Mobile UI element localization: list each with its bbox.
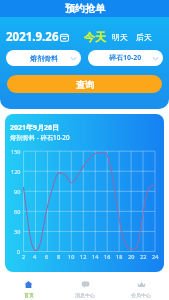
staticText: 14 bbox=[92, 253, 99, 260]
staticText: 2 bbox=[22, 253, 26, 260]
button[interactable]: 今天 bbox=[84, 30, 106, 44]
staticText: 60 bbox=[14, 208, 21, 215]
button[interactable]: 熔剂骨料 bbox=[6, 50, 81, 66]
staticText: 熔剂骨料 bbox=[30, 54, 58, 63]
button[interactable]: Pick date bbox=[60, 33, 69, 42]
staticText: 0 bbox=[17, 248, 21, 255]
staticText: 碎石10-20 bbox=[109, 53, 142, 63]
staticText: 6 bbox=[45, 253, 49, 260]
staticText: 后天 bbox=[136, 32, 152, 42]
staticText: 熔剂骨料 - 碎石10-20 bbox=[10, 133, 70, 142]
staticText: 预约抢单 bbox=[65, 2, 105, 15]
staticText: 30 bbox=[14, 228, 21, 235]
button[interactable]: 查询 bbox=[7, 75, 162, 93]
staticText: 24 bbox=[152, 253, 159, 260]
staticText: 会员中心 bbox=[131, 292, 151, 298]
staticText: 消息中心 bbox=[75, 292, 95, 298]
staticText: 18 bbox=[116, 253, 123, 260]
staticText: 10 bbox=[68, 253, 75, 260]
staticText: 4 bbox=[33, 253, 37, 260]
button[interactable]: 碎石10-20 bbox=[88, 50, 163, 66]
button[interactable]: 后天 bbox=[136, 32, 152, 42]
staticText: 150 bbox=[11, 148, 21, 155]
button[interactable]: 首页 bbox=[0, 272, 57, 300]
staticText: 查询 bbox=[76, 79, 94, 90]
button[interactable]: 明天 bbox=[112, 32, 128, 42]
staticText: 2021.9.26 bbox=[6, 29, 59, 45]
staticText: 2021年9月26日 bbox=[10, 123, 60, 133]
staticText: 120 bbox=[11, 168, 21, 175]
staticText: 明天 bbox=[112, 32, 128, 42]
staticText: 8 bbox=[57, 253, 61, 260]
staticText: 22 bbox=[140, 253, 147, 260]
staticText: 首页 bbox=[24, 292, 34, 298]
staticText: 12 bbox=[80, 253, 87, 260]
button[interactable]: 会员中心 bbox=[113, 272, 169, 300]
staticText: 今天 bbox=[84, 30, 106, 44]
staticText: 20 bbox=[128, 253, 135, 260]
button[interactable]: 消息中心 bbox=[57, 272, 113, 300]
staticText: 90 bbox=[14, 188, 21, 195]
staticText: 16 bbox=[104, 253, 111, 260]
